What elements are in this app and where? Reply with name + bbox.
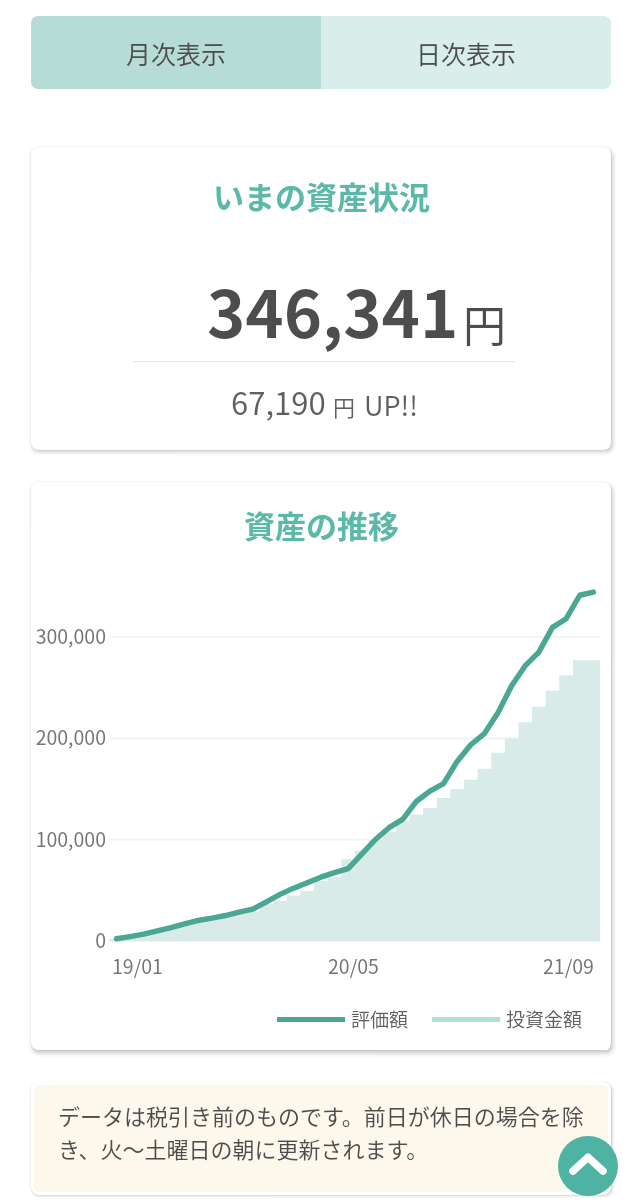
- staticText: 346,341: [207, 263, 459, 357]
- staticText: 日次表示: [416, 35, 517, 71]
- staticText: 100,000: [35, 824, 106, 852]
- staticText: UP!!: [364, 385, 418, 424]
- staticText: 円: [333, 390, 356, 422]
- staticText: 21/09: [543, 951, 594, 979]
- button[interactable]: いまの資産状況: [31, 147, 611, 450]
- button[interactable]: 月次表示: [31, 16, 321, 89]
- staticText: いまの資産状況: [213, 173, 430, 218]
- staticText: データは税引き前のものです。前日が休日の場合を除き、火～土曜日の朝に更新されます…: [58, 1099, 589, 1165]
- staticText: 投資金額: [506, 1005, 583, 1033]
- staticText: 資産の推移: [244, 502, 399, 547]
- staticText: 評価額: [351, 1005, 409, 1033]
- staticText: 200,000: [35, 722, 106, 750]
- button[interactable]: Scroll to top: [558, 1136, 618, 1196]
- staticText: 20/05: [328, 951, 379, 979]
- staticText: 300,000: [35, 621, 106, 649]
- button[interactable]: 日次表示: [321, 16, 611, 89]
- staticText: 円: [463, 292, 506, 354]
- staticText: 月次表示: [126, 35, 227, 71]
- staticText: 67,190: [231, 379, 326, 424]
- staticText: 0: [95, 925, 106, 953]
- staticText: 19/01: [112, 951, 163, 979]
